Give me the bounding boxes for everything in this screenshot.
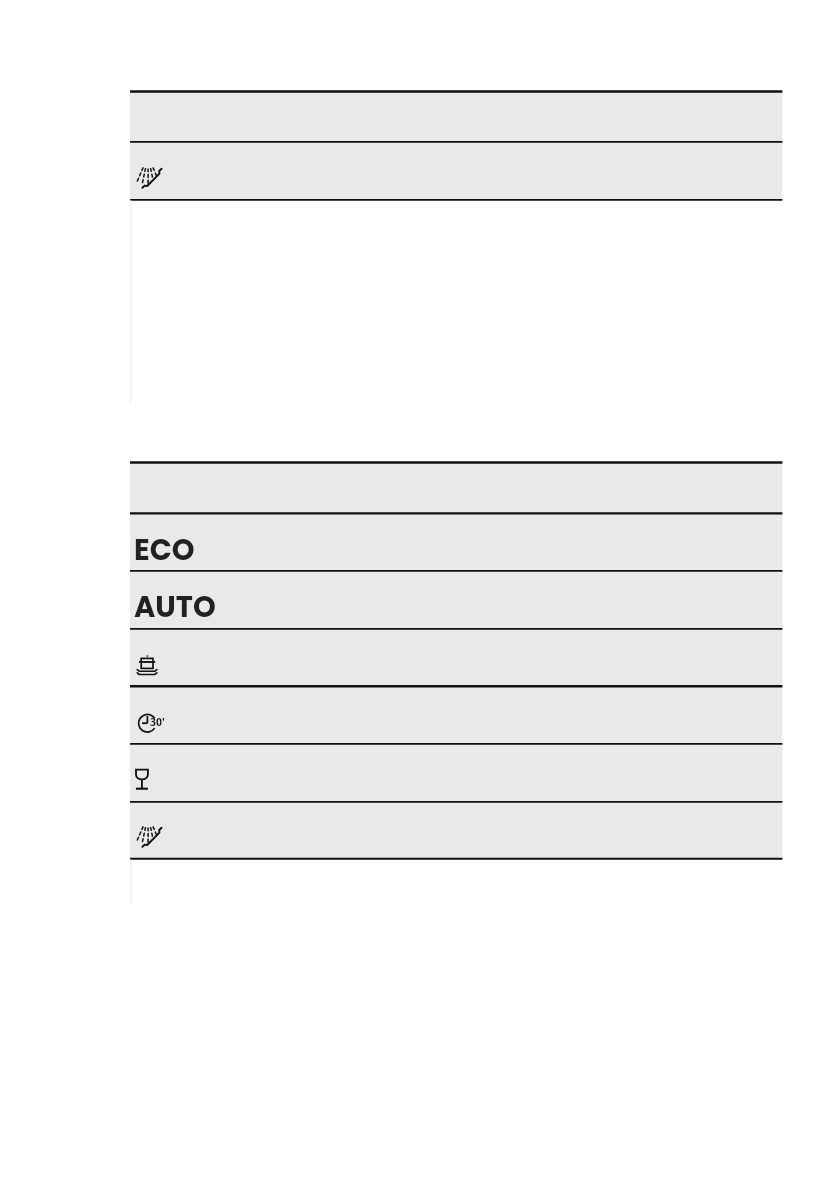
button[interactable]: Programme table header <box>130 92 782 142</box>
button[interactable]: Spray arm programme row <box>130 142 782 200</box>
button[interactable]: Spray arm programme <box>130 802 782 859</box>
staticText: 30' <box>150 715 165 729</box>
button[interactable]: AUTO programme <box>130 571 782 629</box>
staticText: AUTO <box>134 587 216 628</box>
button[interactable]: Programme list header <box>130 463 782 514</box>
button[interactable]: 30 minute programme <box>130 686 782 744</box>
button[interactable]: Glass programme <box>130 744 782 802</box>
button[interactable]: ECO programme <box>130 513 782 571</box>
button[interactable]: Intensive programme <box>130 629 782 686</box>
staticText: ECO <box>134 530 195 571</box>
